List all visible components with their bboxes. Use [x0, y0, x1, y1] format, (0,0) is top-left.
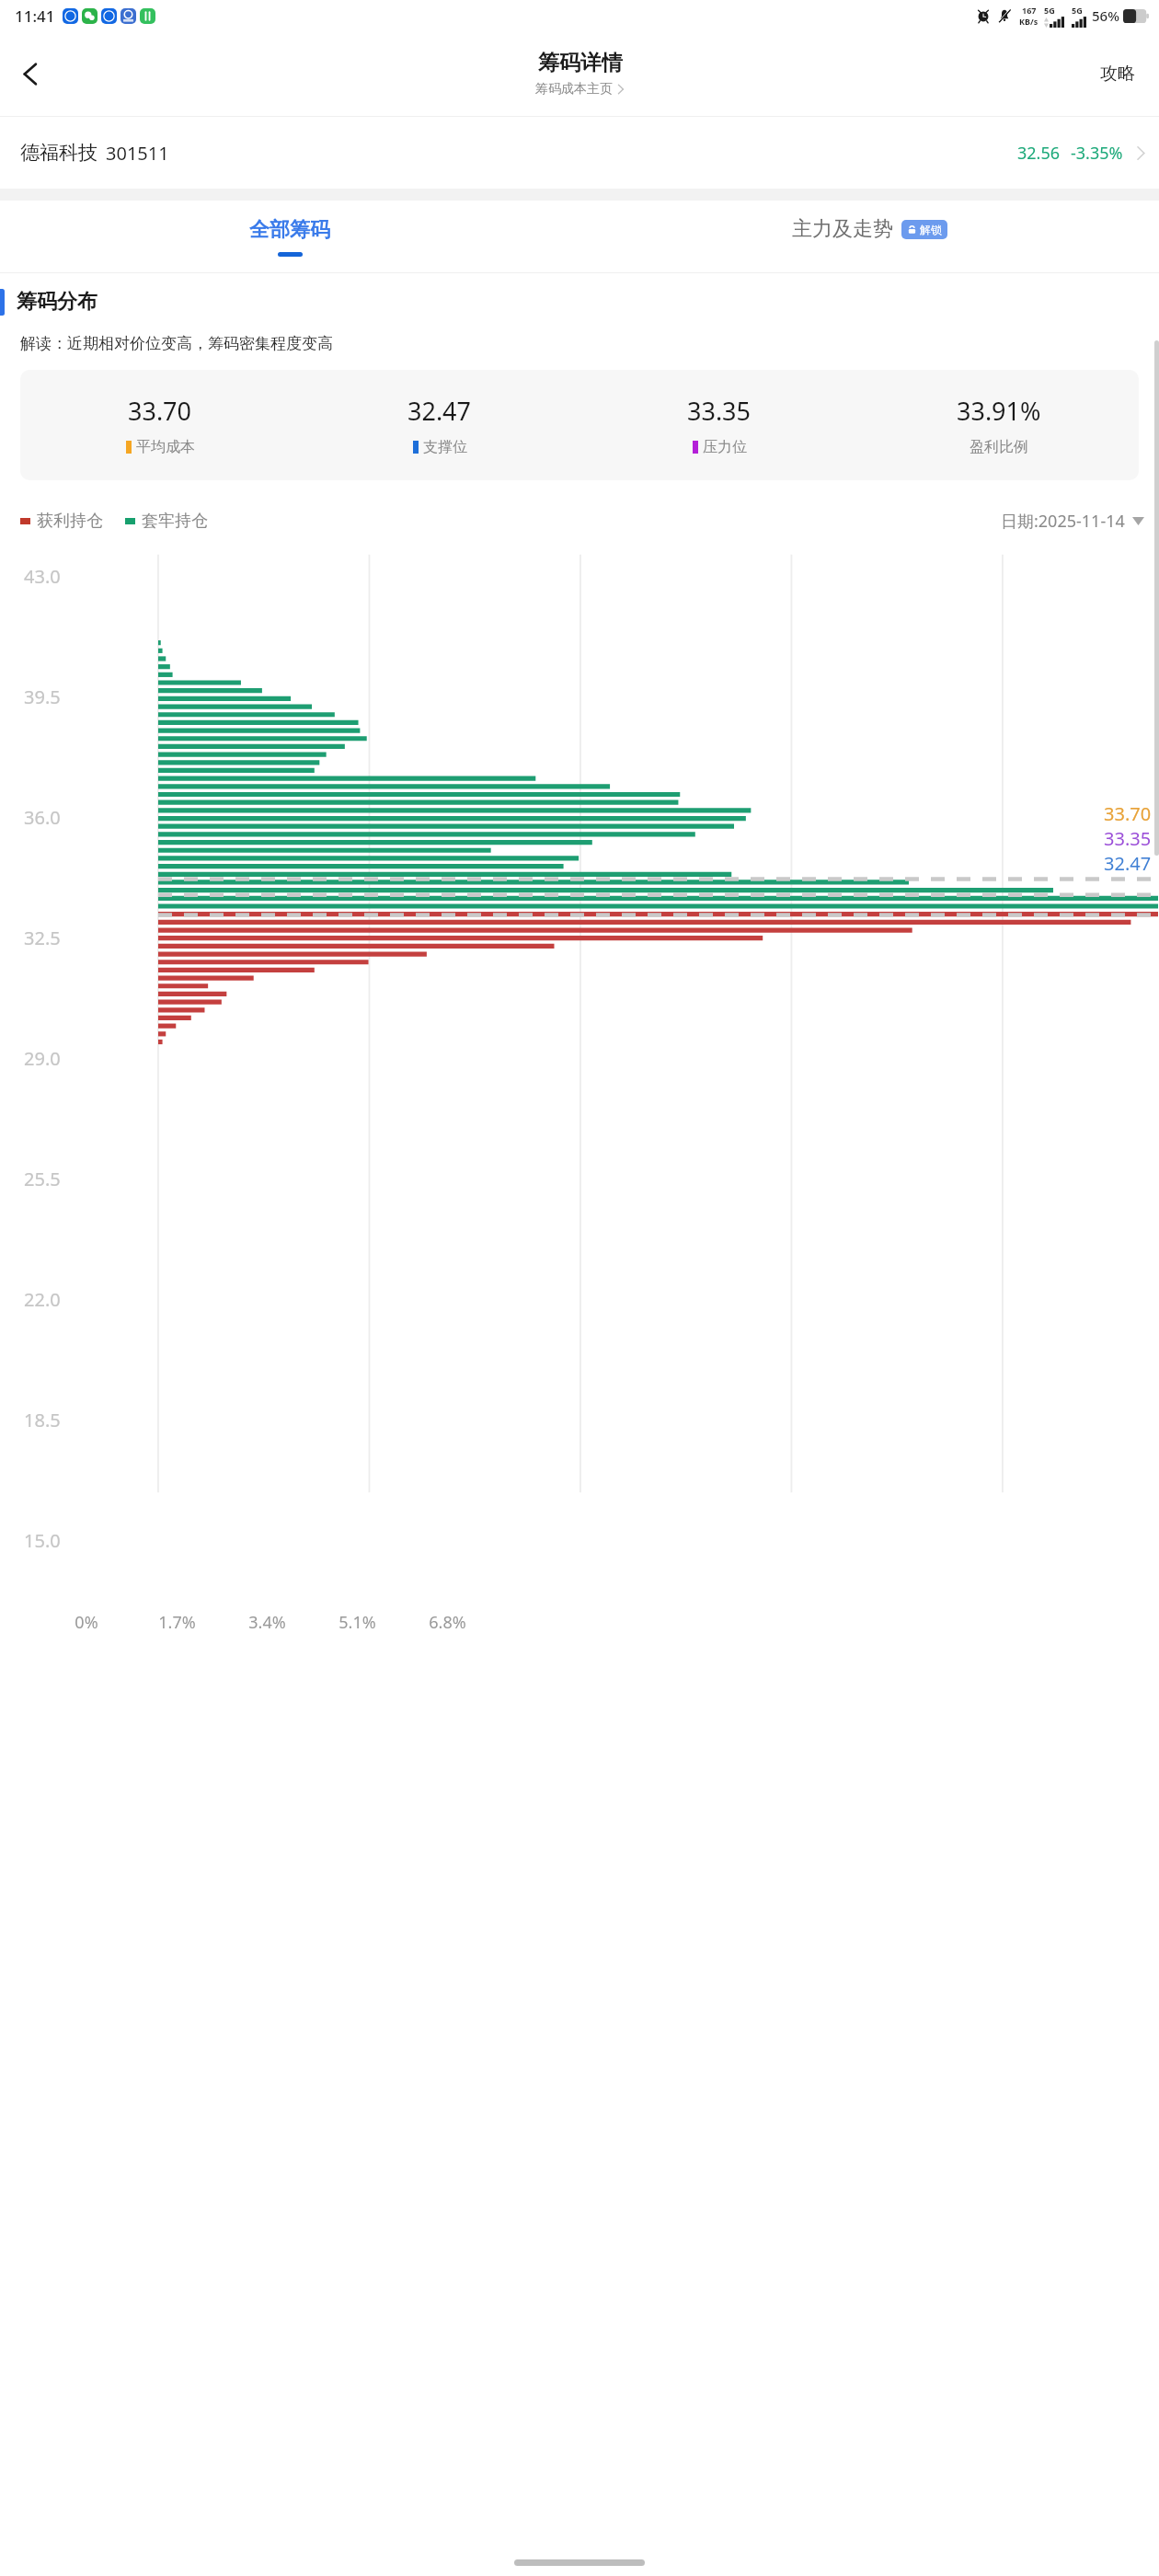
- staticText: 29.0: [24, 1046, 61, 1071]
- button[interactable]: 筹码成本主页: [535, 81, 625, 98]
- staticText: 筹码分布: [17, 289, 98, 315]
- button[interactable]: 日期:2025-11-14: [1001, 510, 1144, 533]
- button[interactable]: 德福科技: [0, 117, 1159, 189]
- button[interactable]: 攻略: [1093, 55, 1142, 92]
- staticText: 301511: [106, 141, 169, 166]
- button[interactable]: Back: [4, 47, 57, 100]
- button[interactable]: 主力及走势: [579, 201, 1159, 272]
- staticText: 3.4%: [248, 1611, 286, 1634]
- staticText: 43.0: [24, 564, 61, 589]
- staticText: 33.91%: [957, 394, 1041, 428]
- staticText: 平均成本: [136, 438, 195, 456]
- staticText: 33.35: [687, 394, 752, 428]
- staticText: 筹码成本主页: [535, 81, 613, 98]
- staticText: 支撑位: [423, 438, 467, 456]
- staticText: 36.0: [24, 805, 61, 830]
- staticText: KB/s: [1019, 16, 1039, 27]
- staticText: -3.35%: [1071, 142, 1123, 165]
- staticText: 解锁: [920, 223, 942, 236]
- staticText: 11:41: [15, 6, 55, 27]
- staticText: 5G: [1044, 5, 1055, 16]
- staticText: 套牢持仓: [142, 511, 208, 532]
- staticText: 39.5: [24, 684, 61, 709]
- staticText: 32.56: [1017, 142, 1061, 165]
- staticText: 5G: [1072, 5, 1083, 16]
- staticText: 5.1%: [339, 1611, 376, 1634]
- staticText: 解读：近期相对价位变高，筹码密集程度变高: [20, 334, 333, 353]
- staticText: 18.5: [24, 1408, 61, 1432]
- staticText: 全部筹码: [249, 217, 330, 243]
- staticText: 德福科技: [20, 141, 98, 165]
- staticText: 6.8%: [429, 1611, 466, 1634]
- staticText: 攻略: [1100, 63, 1135, 85]
- staticText: 32.47: [407, 394, 472, 428]
- staticText: 盈利比例: [970, 438, 1028, 456]
- staticText: 日期:2025-11-14: [1001, 510, 1125, 533]
- staticText: 获利持仓: [37, 511, 103, 532]
- staticText: 压力位: [703, 438, 747, 456]
- staticText: 主力及走势: [792, 216, 893, 242]
- staticText: 32.5: [24, 926, 61, 950]
- staticText: 15.0: [24, 1528, 61, 1553]
- staticText: 25.5: [24, 1167, 61, 1191]
- staticText: 33.35: [1104, 826, 1152, 851]
- staticText: 筹码详情: [538, 50, 623, 76]
- staticText: 33.70: [1104, 801, 1152, 826]
- staticText: 0%: [75, 1611, 98, 1634]
- staticText: 32.47: [1104, 851, 1152, 876]
- staticText: 33.70: [128, 394, 192, 428]
- staticText: 1.7%: [158, 1611, 196, 1634]
- staticText: 167: [1022, 5, 1037, 16]
- staticText: 56%: [1092, 6, 1119, 25]
- staticText: 22.0: [24, 1287, 61, 1312]
- button[interactable]: 全部筹码: [0, 201, 579, 272]
